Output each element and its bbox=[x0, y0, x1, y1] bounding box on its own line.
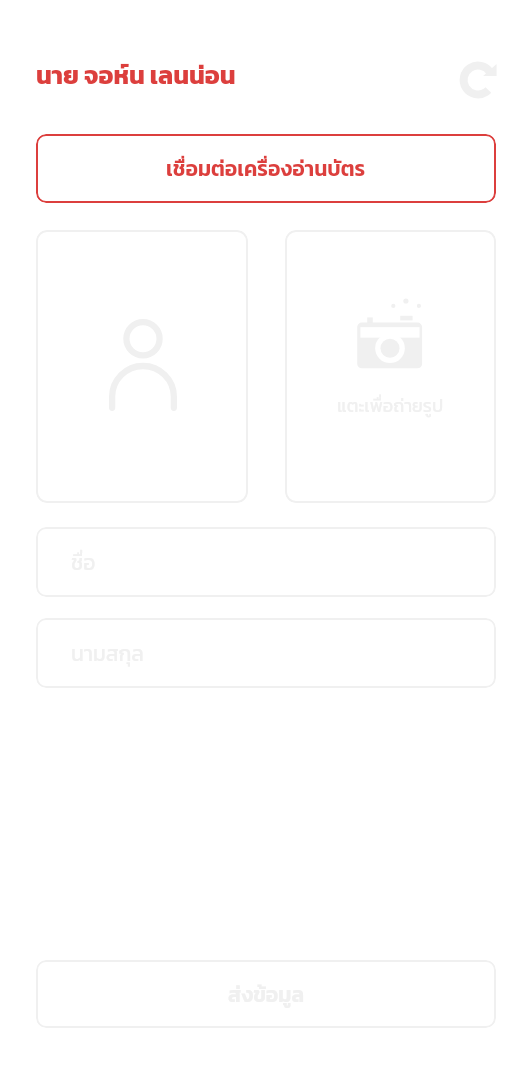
staticText: แตะเพื่อถ่ายรูป bbox=[337, 392, 444, 419]
button[interactable]: ชื่อ bbox=[36, 527, 496, 597]
button[interactable]: Refresh bbox=[454, 56, 502, 104]
button[interactable]: Take photo bbox=[285, 230, 496, 503]
button[interactable]: นามสกุล bbox=[36, 618, 496, 688]
button[interactable]: Profile photo bbox=[36, 230, 248, 503]
staticText: นาย จอห์น เลนน่อน bbox=[36, 56, 236, 93]
button[interactable]: ส่งข้อมูล bbox=[36, 960, 496, 1028]
button[interactable]: เชื่อมต่อเครื่องอ่านบัตร bbox=[36, 134, 496, 203]
staticText: ส่งข้อมูล bbox=[228, 979, 305, 1010]
staticText: นามสกุล bbox=[71, 638, 144, 669]
staticText: ชื่อ bbox=[71, 547, 96, 578]
staticText: เชื่อมต่อเครื่องอ่านบัตร bbox=[166, 153, 366, 184]
